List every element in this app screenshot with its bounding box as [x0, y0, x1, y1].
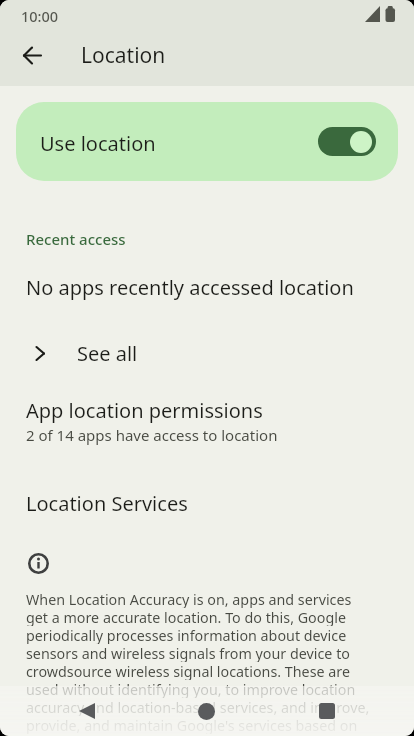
button[interactable]: Use location: [16, 102, 398, 181]
staticText: periodically processes information about…: [26, 626, 347, 644]
staticText: Location Services: [26, 490, 188, 517]
button[interactable]: [12, 35, 52, 75]
button[interactable]: [63, 687, 111, 735]
staticText: 10:00: [21, 6, 59, 26]
staticText: No apps recently accessed location: [26, 274, 354, 301]
staticText: When Location Accuracy is on, apps and s…: [26, 590, 352, 608]
staticText: 2 of 14 apps have access to location: [26, 425, 278, 445]
staticText: used without identifying you, to improve…: [26, 680, 356, 698]
staticText: sensors and wireless signals from your d…: [26, 644, 350, 662]
staticText: Use location: [40, 130, 156, 157]
button[interactable]: [182, 687, 230, 735]
staticText: accuracy and location-based services, an…: [26, 698, 370, 716]
staticText: Recent access: [26, 229, 126, 249]
button[interactable]: [318, 127, 376, 156]
staticText: See all: [77, 340, 138, 367]
staticText: provide, and maintain Google's services …: [26, 716, 358, 734]
button[interactable]: See all: [0, 331, 414, 375]
staticText: get a more accurate location. To do this…: [26, 608, 346, 626]
staticText: crowdsource wireless signal locations. T…: [26, 662, 350, 680]
staticText: App location permissions: [26, 397, 263, 424]
button[interactable]: App location permissions: [0, 397, 414, 445]
button[interactable]: [303, 687, 351, 735]
staticText: Location: [81, 41, 166, 70]
